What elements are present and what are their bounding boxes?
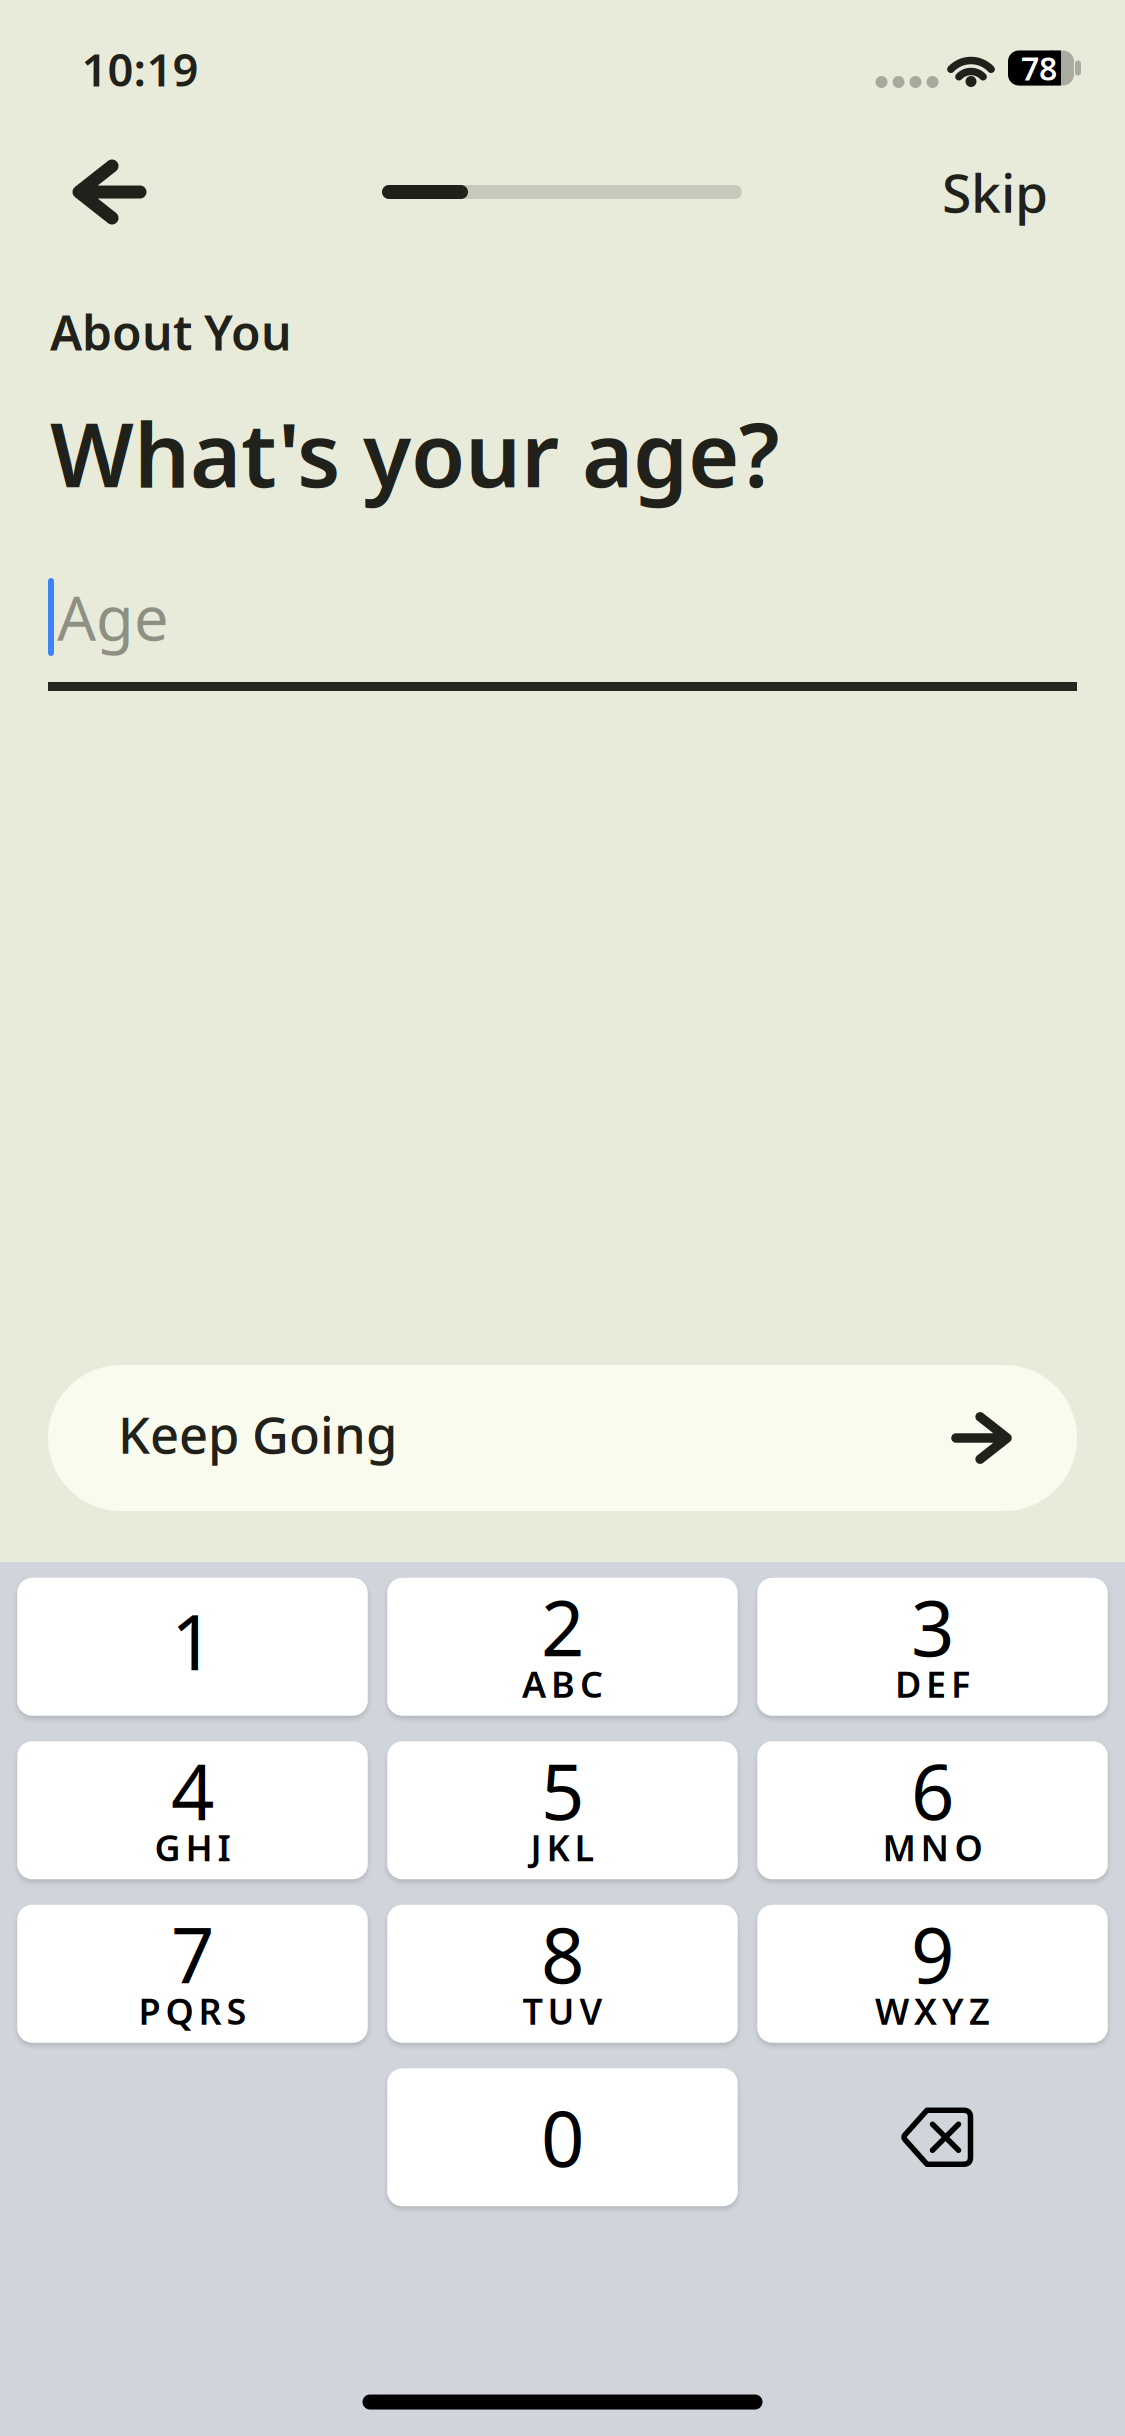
staticText: 4 — [171, 1740, 214, 1841]
staticText: 78 — [1021, 47, 1057, 89]
button[interactable]: Age — [48, 575, 1077, 691]
staticText: MNO — [882, 1823, 982, 1871]
button[interactable]: 5 — [387, 1741, 738, 1879]
staticText: 8 — [541, 1903, 584, 2004]
staticText: 1 — [171, 1590, 214, 1691]
button[interactable]: 0 — [387, 2068, 738, 2206]
staticText: 5 — [541, 1740, 584, 1841]
staticText: 10:19 — [81, 39, 198, 99]
staticText: 9 — [911, 1903, 954, 2004]
staticText: GHI — [154, 1823, 230, 1871]
staticText: PQRS — [138, 1987, 246, 2035]
staticText: ABC — [522, 1660, 603, 1708]
button[interactable]: 4 — [17, 1741, 368, 1879]
staticText: 3 — [911, 1576, 954, 1677]
staticText: 0 — [541, 2087, 584, 2188]
staticText: 2 — [541, 1576, 584, 1677]
button[interactable]: 2 — [387, 1578, 738, 1716]
staticText: 7 — [171, 1903, 214, 2004]
staticText: DEF — [895, 1660, 970, 1708]
staticText: Skip — [942, 157, 1048, 227]
button[interactable]: Back — [62, 152, 156, 232]
button[interactable]: Skip — [942, 157, 1048, 227]
staticText: Age — [57, 576, 169, 658]
button[interactable]: 6 — [757, 1741, 1108, 1879]
staticText: What's your age? — [50, 395, 780, 511]
button[interactable]: 7 — [17, 1905, 368, 2043]
button[interactable]: 9 — [757, 1905, 1108, 2043]
button[interactable]: 8 — [387, 1905, 738, 2043]
staticText: 6 — [911, 1740, 954, 1841]
staticText: WXYZ — [875, 1987, 990, 2035]
staticText: About You — [50, 300, 292, 364]
button[interactable]: Delete — [757, 2068, 1108, 2206]
button[interactable]: 3 — [757, 1578, 1108, 1716]
staticText: JKL — [530, 1823, 594, 1871]
staticText: TUV — [522, 1987, 602, 2035]
button[interactable]: 1 — [17, 1578, 368, 1716]
button[interactable]: Keep Going — [48, 1365, 1077, 1511]
staticText: Keep Going — [118, 1400, 397, 1468]
